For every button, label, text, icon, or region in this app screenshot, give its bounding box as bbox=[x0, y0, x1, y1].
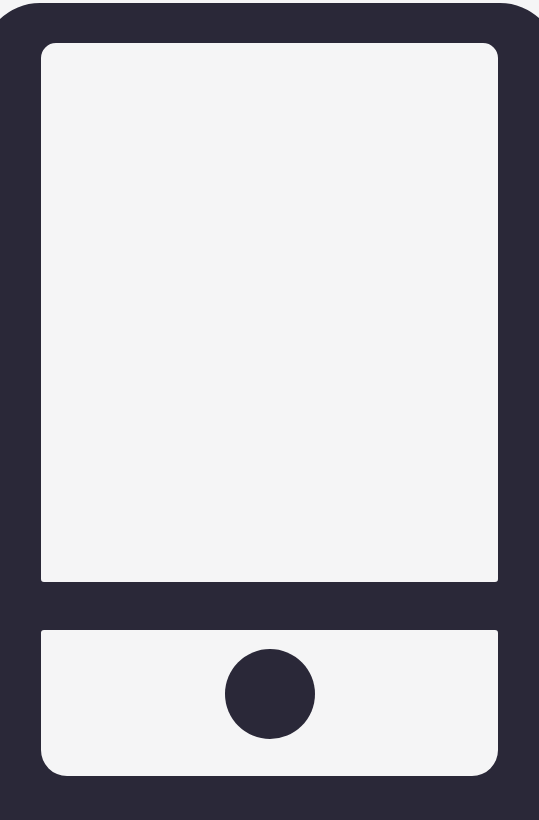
button[interactable]: Mobile phone icon bbox=[0, 0, 539, 820]
